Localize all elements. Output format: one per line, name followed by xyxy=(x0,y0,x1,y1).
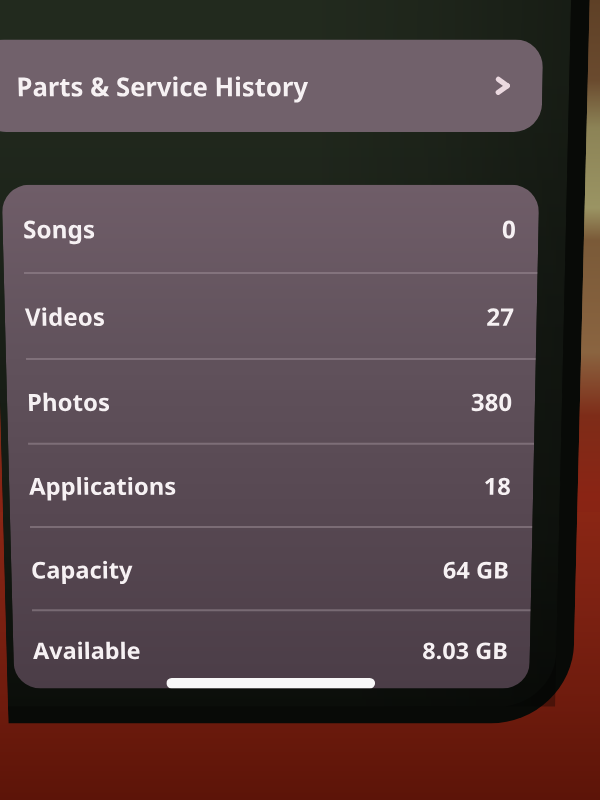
button[interactable]: Available xyxy=(12,611,531,688)
staticText: Photos xyxy=(27,385,110,418)
other: Open Parts & Service History xyxy=(491,74,514,97)
staticText: Parts & Service History xyxy=(16,68,308,104)
button[interactable]: Videos xyxy=(4,274,538,358)
staticText: Available xyxy=(32,634,142,666)
button[interactable]: Songs xyxy=(1,185,539,272)
staticText: 64 GB xyxy=(443,553,510,585)
staticText: 380 xyxy=(471,385,513,418)
button[interactable]: Applications xyxy=(8,445,534,526)
staticText: Songs xyxy=(22,212,96,246)
staticText: Capacity xyxy=(31,553,134,585)
button[interactable]: Photos xyxy=(6,360,536,443)
staticText: 18 xyxy=(483,469,512,502)
staticText: Applications xyxy=(29,469,177,502)
staticText: 0 xyxy=(502,212,516,246)
button[interactable]: Capacity xyxy=(10,528,532,609)
button[interactable]: Parts & Service History xyxy=(0,39,543,132)
staticText: 8.03 GB xyxy=(422,634,509,666)
staticText: 27 xyxy=(486,299,515,333)
staticText: Videos xyxy=(25,299,106,333)
